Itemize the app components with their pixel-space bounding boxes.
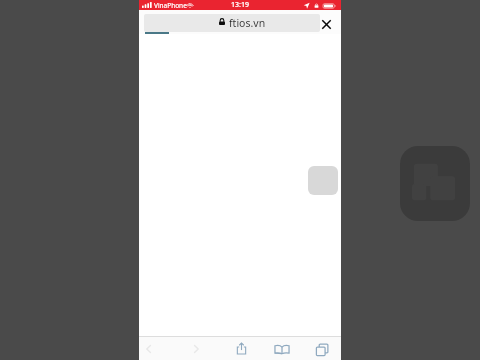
button[interactable] [144,14,320,32]
staticText: ftios.vn [229,16,266,30]
button[interactable]: Back [140,337,157,360]
button[interactable]: Tabs [313,337,330,360]
button[interactable]: Close [317,15,335,33]
staticText: 13:19 [231,0,249,10]
button[interactable]: Forward [187,337,204,360]
button[interactable]: Share [233,337,250,360]
staticText: VinaPhone [154,1,187,10]
button[interactable]: Bookmarks [273,337,290,360]
